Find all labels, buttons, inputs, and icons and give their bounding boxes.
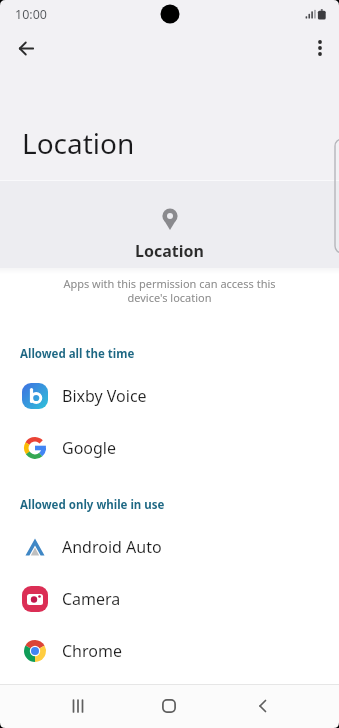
button[interactable]: Bixby Voice (0, 370, 339, 422)
button[interactable] (54, 684, 102, 728)
staticText: Allowed all the time (20, 346, 135, 362)
button[interactable]: Camera (0, 573, 339, 625)
staticText: Allowed only while in use (20, 497, 165, 513)
button[interactable] (302, 30, 338, 66)
staticText: Apps with this permission can access thi… (63, 276, 276, 305)
staticText: Location (22, 124, 135, 162)
staticText: Google (62, 437, 117, 459)
staticText: Chrome (62, 640, 122, 662)
staticText: Camera (62, 588, 121, 610)
staticText: Android Auto (62, 536, 162, 558)
button[interactable] (8, 30, 44, 66)
staticText: Bixby Voice (62, 385, 147, 407)
button[interactable] (239, 684, 287, 728)
button[interactable]: Android Auto (0, 521, 339, 573)
staticText: 10:00 (15, 6, 47, 23)
button[interactable]: Chrome (0, 625, 339, 677)
button[interactable]: Google (0, 422, 339, 474)
staticText: Location (135, 240, 204, 262)
button[interactable] (145, 684, 193, 728)
